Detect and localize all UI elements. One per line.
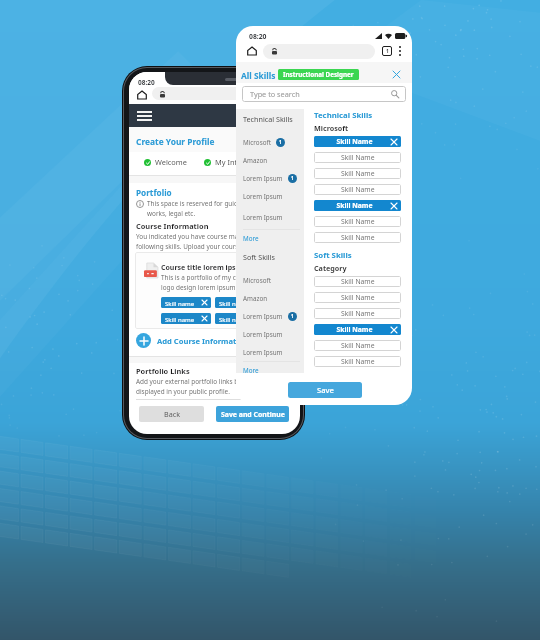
staticText: Skill name [219,299,249,307]
staticText: Soft Skills [314,250,352,261]
staticText: Add Course Information [157,336,249,346]
staticText: You indicated you have course material f… [136,232,276,251]
staticText: Skill name [165,315,195,323]
staticText: Skill Name [341,169,375,178]
button[interactable]: Skill Name [314,324,401,335]
button[interactable]: Save [288,382,362,398]
staticText: Welcome [155,157,187,167]
button[interactable]: Instructional Designer [278,69,359,80]
staticText: Back [164,409,180,419]
staticText: Save and Continue [221,410,285,419]
staticText: Add your external portfolio links below … [136,377,270,396]
staticText: Skill name [219,315,249,323]
staticText: Technical Skills [314,110,373,121]
button[interactable]: Skill Name [314,276,401,287]
button[interactable]: Add Course Information [136,333,249,348]
button[interactable]: Lorem Ipsum [243,343,300,361]
button[interactable]: Skill Name [314,356,401,367]
staticText: Create Your Profile [136,136,215,147]
staticText: Portfolio Links [136,366,190,376]
button[interactable]: Skill Name [314,308,401,319]
staticText: Course title lorem ipsum dolor [161,263,268,273]
button[interactable]: Skill Name [314,184,401,195]
button[interactable]: Skill name [161,313,211,324]
button[interactable]: Close [390,68,403,81]
button[interactable]: Skill Name [314,216,401,227]
button[interactable]: More options [399,46,401,56]
button[interactable]: Amazon [243,289,300,307]
staticText: Skill Name [341,277,375,286]
staticText: Lorem Ipsum [243,213,283,222]
button[interactable]: Skill Name [314,168,401,179]
button[interactable]: Skill Name [314,340,401,351]
staticText: Skill Name [341,153,375,162]
staticText: Microsoft [314,123,349,133]
button[interactable]: Skill name [215,297,265,308]
button[interactable]: Skill Name [314,292,401,303]
staticText: Technical Skills [243,114,293,124]
button[interactable]: Notifications [279,110,290,121]
staticText: Category [314,263,347,273]
staticText: Skill Name [341,233,375,242]
staticText: Course Information [136,221,209,231]
staticText: 1 [386,48,389,55]
staticText: Skill name [165,299,195,307]
staticText: Amazon [243,294,268,303]
staticText: Lorem Ipsum [243,348,283,357]
staticText: Microsoft [243,138,271,147]
button[interactable]: More [243,234,259,243]
staticText: Microsoft [243,276,271,285]
button[interactable]: Tabs [382,46,392,56]
staticText: Portfolio [136,187,172,198]
button[interactable]: Back [139,406,204,422]
staticText: Skill Name [318,201,391,210]
staticText: 1 [291,175,294,182]
staticText: 08:20 [138,78,155,87]
button[interactable]: Skill Name [314,232,401,243]
button[interactable]: Amazon [243,151,300,169]
button[interactable]: Save and Continue [216,406,289,422]
button[interactable]: Type to search [242,86,406,102]
staticText: Instructional Designer [283,70,354,79]
staticText: 08:20 [249,32,267,41]
button[interactable]: Menu [137,111,152,121]
button[interactable]: Skill name [215,313,265,324]
button[interactable]: Lorem Ipsum [243,187,300,205]
staticText: Skill Name [341,357,375,366]
staticText: Lorem Ipsum [243,330,283,339]
staticText: 1 [291,313,294,320]
button[interactable]: Skill Name [314,152,401,163]
staticText: Save [317,385,334,395]
staticText: Type to search [250,89,300,99]
button[interactable]: Skill Name [314,136,401,147]
button[interactable]: Microsoft [243,271,300,289]
staticText: Amazon [243,156,268,165]
staticText: Skill Name [318,137,391,146]
staticText: Skill Name [341,309,375,318]
button[interactable]: Lorem Ipsum [243,169,300,187]
staticText: Skill Name [341,185,375,194]
staticText: Skill Name [318,325,391,334]
button[interactable]: Skill Name [314,200,401,211]
button[interactable]: Microsoft [243,133,300,151]
staticText: This space is reserved for guidance on h… [147,199,282,218]
staticText: Lorem Ipsum [243,312,283,321]
button[interactable]: Lorem Ipsum [243,325,300,343]
button[interactable]: Lorem Ipsum [243,205,300,229]
staticText: This is a portfolio of my creative work,… [161,273,275,292]
button[interactable]: More [243,366,259,373]
staticText: Soft Skills [243,252,276,262]
staticText: Lorem Ipsum [243,192,283,201]
staticText: Lorem Ipsum [243,174,283,183]
staticText: My Information [215,157,270,167]
staticText: 1 [279,139,282,146]
staticText: All Skills [241,70,276,81]
staticText: Skill Name [341,217,375,226]
button[interactable]: Skill name [161,297,211,308]
button[interactable]: Lorem Ipsum [243,307,300,325]
staticText: Skill Name [341,341,375,350]
staticText: Skill Name [341,293,375,302]
